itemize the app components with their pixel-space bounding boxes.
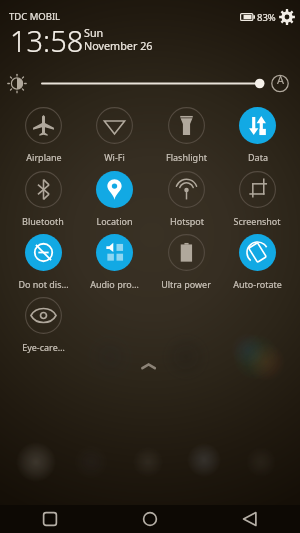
staticText: November 26	[84, 38, 153, 53]
staticText: Location	[96, 215, 133, 227]
staticText: Do not dis…	[18, 278, 69, 290]
button[interactable]: Recents	[0, 505, 100, 533]
button[interactable]: Auto brightness	[272, 71, 289, 88]
staticText: Ultra power	[161, 278, 211, 290]
button[interactable]: Screenshot	[221, 164, 293, 230]
button[interactable]: Hotspot	[150, 164, 222, 230]
button[interactable]: Location	[78, 164, 150, 230]
staticText: Wi-Fi	[104, 151, 125, 163]
staticText: 83%	[257, 11, 276, 24]
staticText: Auto-rotate	[233, 278, 282, 290]
staticText: Hotspot	[170, 215, 204, 227]
staticText: Sun	[84, 25, 104, 40]
staticText: Screenshot	[233, 215, 281, 227]
button[interactable]: Airplane	[7, 100, 79, 166]
staticText: Airplane	[26, 151, 62, 163]
button[interactable]: Wi-Fi	[78, 100, 150, 166]
staticText: A	[277, 72, 285, 87]
staticText: Bluetooth	[22, 215, 64, 227]
button[interactable]: Brightness	[0, 71, 300, 96]
staticText: Eye-care…	[22, 341, 65, 353]
button[interactable]: Settings	[279, 9, 295, 25]
button[interactable]: Flashlight	[150, 100, 222, 166]
button[interactable]: Auto-rotate	[221, 227, 293, 293]
button[interactable]: Home	[100, 505, 200, 533]
button[interactable]: Data	[221, 100, 293, 166]
staticText: Data	[248, 151, 268, 163]
button[interactable]: Eye-care…	[7, 290, 79, 356]
button[interactable]: Do not dis…	[7, 227, 79, 293]
staticText: Flashlight	[166, 151, 207, 163]
button[interactable]: Bluetooth	[7, 164, 79, 230]
button[interactable]: Ultra power	[150, 227, 222, 293]
staticText: 13:58	[10, 21, 84, 60]
button[interactable]: Back	[200, 505, 300, 533]
staticText: TDC MOBIL	[9, 10, 61, 23]
button[interactable]: Collapse	[0, 352, 300, 533]
button[interactable]: Audio pro…	[78, 227, 150, 293]
staticText: Audio pro…	[90, 278, 139, 290]
